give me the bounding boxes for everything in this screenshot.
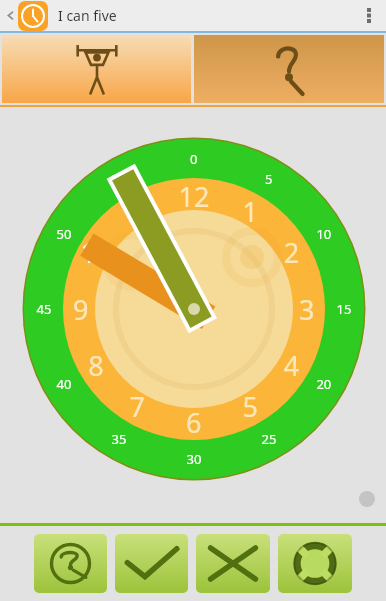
button[interactable]: Help xyxy=(278,534,352,593)
button[interactable]: More options xyxy=(352,0,386,31)
button[interactable]: Hint xyxy=(34,534,107,593)
button[interactable]: Correct xyxy=(115,534,188,593)
button[interactable]: Wrong xyxy=(196,534,270,593)
button[interactable]: Back xyxy=(3,0,18,31)
staticText: I can five xyxy=(58,6,117,25)
button[interactable]: App icon xyxy=(18,1,48,31)
button[interactable]: Exercise tab xyxy=(2,35,191,103)
button[interactable]: Quiz tab xyxy=(194,35,384,103)
